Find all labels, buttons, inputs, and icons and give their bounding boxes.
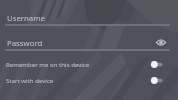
button[interactable]: Start with device — [0, 72, 178, 88]
staticText: Remember me on this device — [6, 60, 90, 68]
button[interactable]: Show password — [154, 35, 168, 49]
staticText: Password — [7, 38, 43, 49]
button[interactable]: Remember me on this device — [0, 56, 178, 72]
staticText: Start with device — [6, 76, 54, 84]
staticText: Username — [7, 13, 45, 24]
